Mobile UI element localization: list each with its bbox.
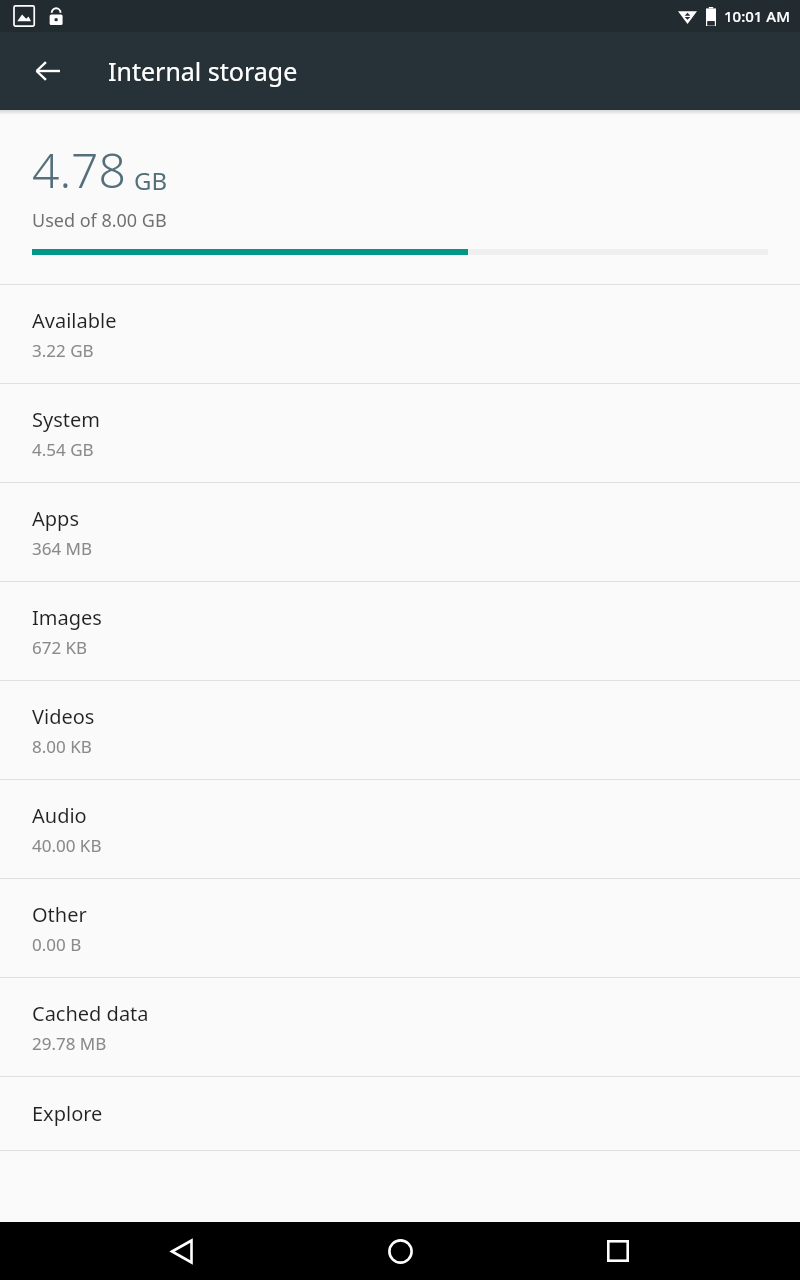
staticText: System xyxy=(32,406,100,433)
staticText: Other xyxy=(32,901,87,928)
staticText: Used of 8.00 GB xyxy=(32,208,167,233)
button[interactable]: Apps xyxy=(0,483,800,581)
staticText: GB xyxy=(134,164,168,197)
staticText: 0.00 B xyxy=(32,933,82,956)
staticText: Images xyxy=(32,604,102,631)
staticText: Explore xyxy=(32,1100,103,1127)
button[interactable]: Audio xyxy=(0,780,800,878)
staticText: Audio xyxy=(32,802,87,829)
button[interactable]: Images xyxy=(0,582,800,680)
staticText: 29.78 MB xyxy=(32,1032,107,1055)
button[interactable]: Recent apps xyxy=(582,1222,654,1280)
staticText: 672 KB xyxy=(32,636,88,659)
staticText: Apps xyxy=(32,505,79,532)
button[interactable]: Available xyxy=(0,285,800,383)
staticText: Internal storage xyxy=(108,54,298,88)
button[interactable]: Explore xyxy=(0,1077,800,1150)
staticText: Videos xyxy=(32,703,95,730)
staticText: 10:01 AM xyxy=(724,6,790,26)
staticText: 8.00 KB xyxy=(32,735,92,758)
staticText: Cached data xyxy=(32,1000,149,1027)
staticText: 364 MB xyxy=(32,537,93,560)
button[interactable]: Cached data xyxy=(0,978,800,1076)
staticText: 4.78 xyxy=(32,137,126,202)
staticText: Available xyxy=(32,307,117,334)
staticText: 4.54 GB xyxy=(32,438,94,461)
button[interactable]: Home xyxy=(364,1222,436,1280)
staticText: 3.22 GB xyxy=(32,339,94,362)
button[interactable]: Videos xyxy=(0,681,800,779)
button[interactable]: Other xyxy=(0,879,800,977)
button[interactable]: Back xyxy=(146,1222,218,1280)
button[interactable]: Back xyxy=(12,35,84,107)
button[interactable]: System xyxy=(0,384,800,482)
staticText: 40.00 KB xyxy=(32,834,102,857)
